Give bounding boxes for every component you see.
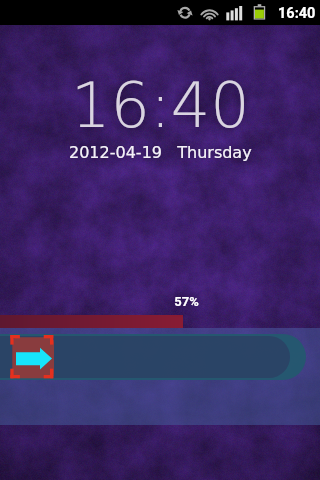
- staticText: 16:40: [71, 69, 250, 141]
- staticText: 2012-04-19 Thursday: [69, 143, 252, 162]
- button[interactable]: Slide to unlock: [10, 335, 54, 379]
- staticText: 16:40: [278, 5, 316, 22]
- staticText: 57%: [174, 294, 199, 309]
